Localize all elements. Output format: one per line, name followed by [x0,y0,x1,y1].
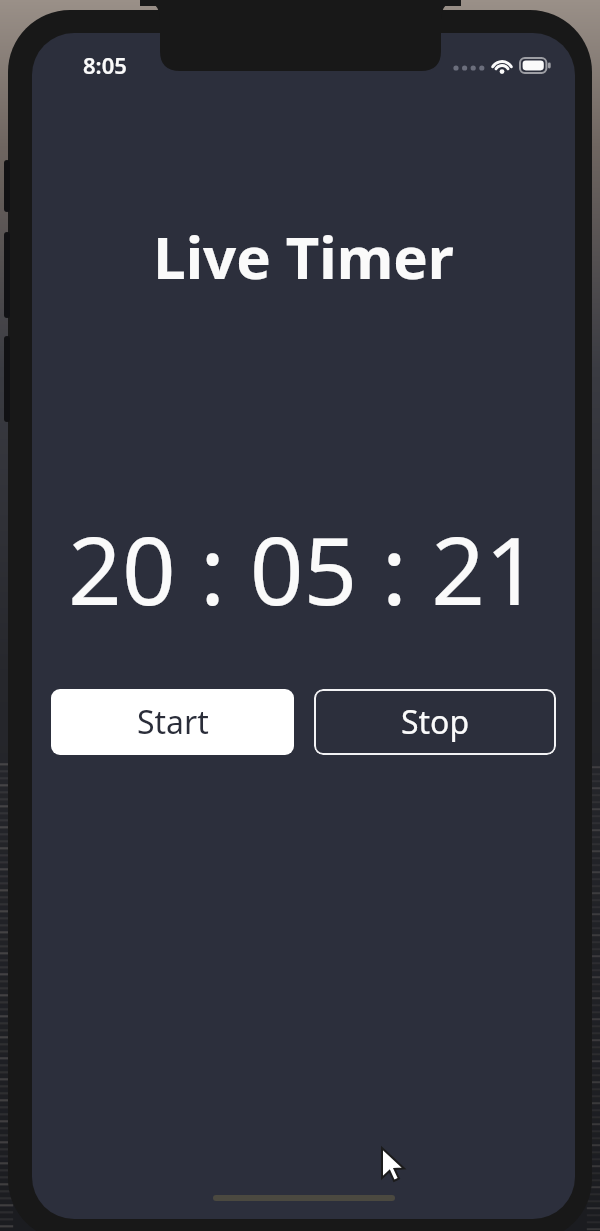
staticText: 20 : 05 : 21 [68,505,539,633]
staticText: Live Timer [153,217,454,296]
staticText: Stop [401,700,470,744]
staticText: Start [137,700,209,744]
button[interactable]: Start [51,689,294,755]
button[interactable]: Stop [314,689,556,755]
staticText: 8:05 [83,50,127,80]
